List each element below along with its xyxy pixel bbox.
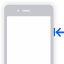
button[interactable]: Device preview bbox=[0, 1, 54, 64]
button[interactable]: Back bbox=[52, 24, 64, 40]
